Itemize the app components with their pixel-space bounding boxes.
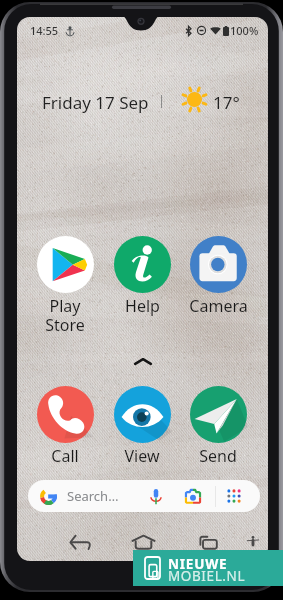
button[interactable]: Camera — [180, 236, 256, 317]
staticText: 14:55 — [30, 23, 59, 38]
staticText: Friday 17 Sep — [42, 91, 149, 114]
staticText: Call — [51, 445, 79, 467]
staticText: 17° — [213, 91, 240, 114]
staticText: Search… — [67, 487, 119, 505]
staticText: MOBIEL.NL — [168, 567, 246, 585]
staticText: NIEUWE — [168, 555, 228, 573]
button[interactable]: Help — [104, 236, 180, 317]
staticText: Help — [125, 295, 160, 317]
button[interactable]: Search… — [28, 480, 260, 512]
button[interactable]: Call — [27, 386, 103, 467]
staticText: Send — [199, 445, 237, 467]
staticText: View — [124, 445, 160, 467]
button[interactable]: Recents — [191, 530, 223, 555]
staticText: 100% — [230, 23, 259, 38]
button[interactable]: View — [104, 386, 180, 467]
button[interactable]: Accessibility — [241, 530, 265, 554]
button[interactable]: Back — [64, 529, 96, 555]
button[interactable]: Send — [180, 386, 256, 467]
button[interactable]: Play Store — [27, 236, 103, 335]
staticText: Camera — [189, 295, 248, 317]
staticText: Play Store — [45, 295, 85, 335]
button[interactable]: Home — [126, 529, 161, 555]
